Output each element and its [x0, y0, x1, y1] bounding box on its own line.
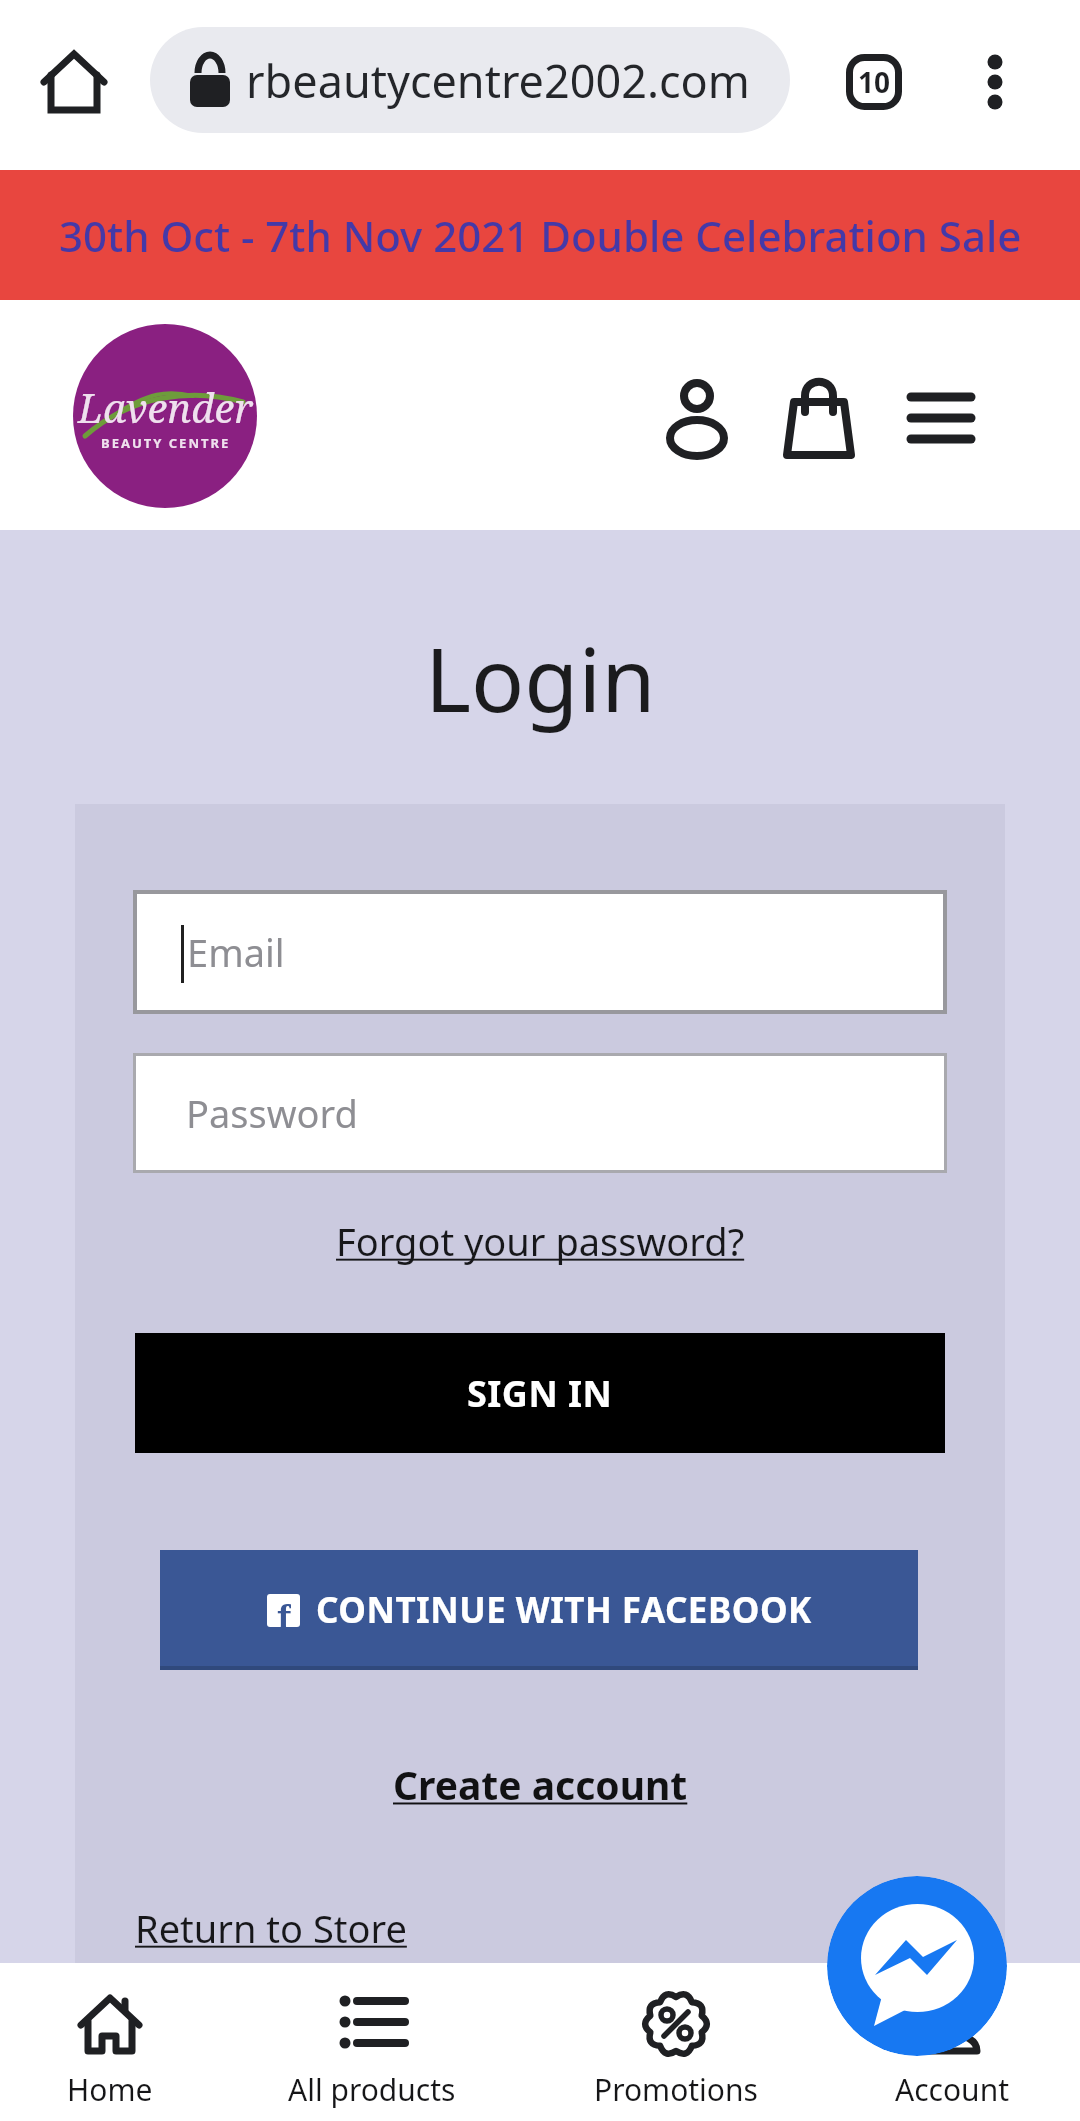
button[interactable]: SIGN IN	[135, 1333, 945, 1453]
staticText: CONTINUE WITH FACEBOOK	[316, 1586, 812, 1634]
button[interactable]	[782, 376, 856, 460]
button[interactable]: 10	[840, 48, 908, 116]
staticText: All products	[288, 2069, 456, 2110]
staticText: 30th Oct - 7th Nov 2021 Double Celebrati…	[59, 207, 1022, 264]
button[interactable]: Home	[0, 1991, 250, 2110]
button[interactable]: Forgot your password?	[336, 1215, 745, 1267]
button[interactable]: Password	[136, 1056, 944, 1170]
staticText: Account	[895, 2069, 1010, 2110]
staticText: Lavender	[78, 380, 253, 434]
button[interactable]: rbeautycentre2002.com	[150, 27, 790, 133]
button[interactable]: Return to Store	[135, 1902, 407, 1954]
staticText: BEAUTY CENTRE	[101, 434, 231, 452]
button[interactable]: Account	[812, 1991, 1080, 2110]
staticText: 10	[858, 63, 891, 101]
staticText: Promotions	[594, 2069, 758, 2110]
staticText: rbeautycentre2002.com	[246, 50, 750, 111]
staticText: Login	[425, 618, 656, 738]
button[interactable]	[965, 45, 1025, 120]
button[interactable]	[827, 1876, 1007, 2056]
staticText: Home	[67, 2069, 153, 2110]
button[interactable]: Create account	[393, 1758, 688, 1811]
button[interactable]	[34, 42, 114, 122]
button[interactable]	[660, 378, 734, 458]
button[interactable]: 30th Oct - 7th Nov 2021 Double Celebrati…	[0, 170, 1080, 300]
button[interactable]: All products	[232, 1991, 512, 2110]
staticText: f	[277, 1594, 291, 1627]
staticText: Password	[186, 1087, 358, 1139]
button[interactable]: Email	[137, 894, 943, 1010]
button[interactable]: Lavender	[73, 324, 257, 508]
staticText: Email	[187, 926, 285, 978]
button[interactable]: f	[160, 1550, 918, 1670]
button[interactable]: Promotions	[536, 1991, 816, 2110]
button[interactable]	[908, 392, 976, 444]
staticText: SIGN IN	[467, 1369, 613, 1418]
